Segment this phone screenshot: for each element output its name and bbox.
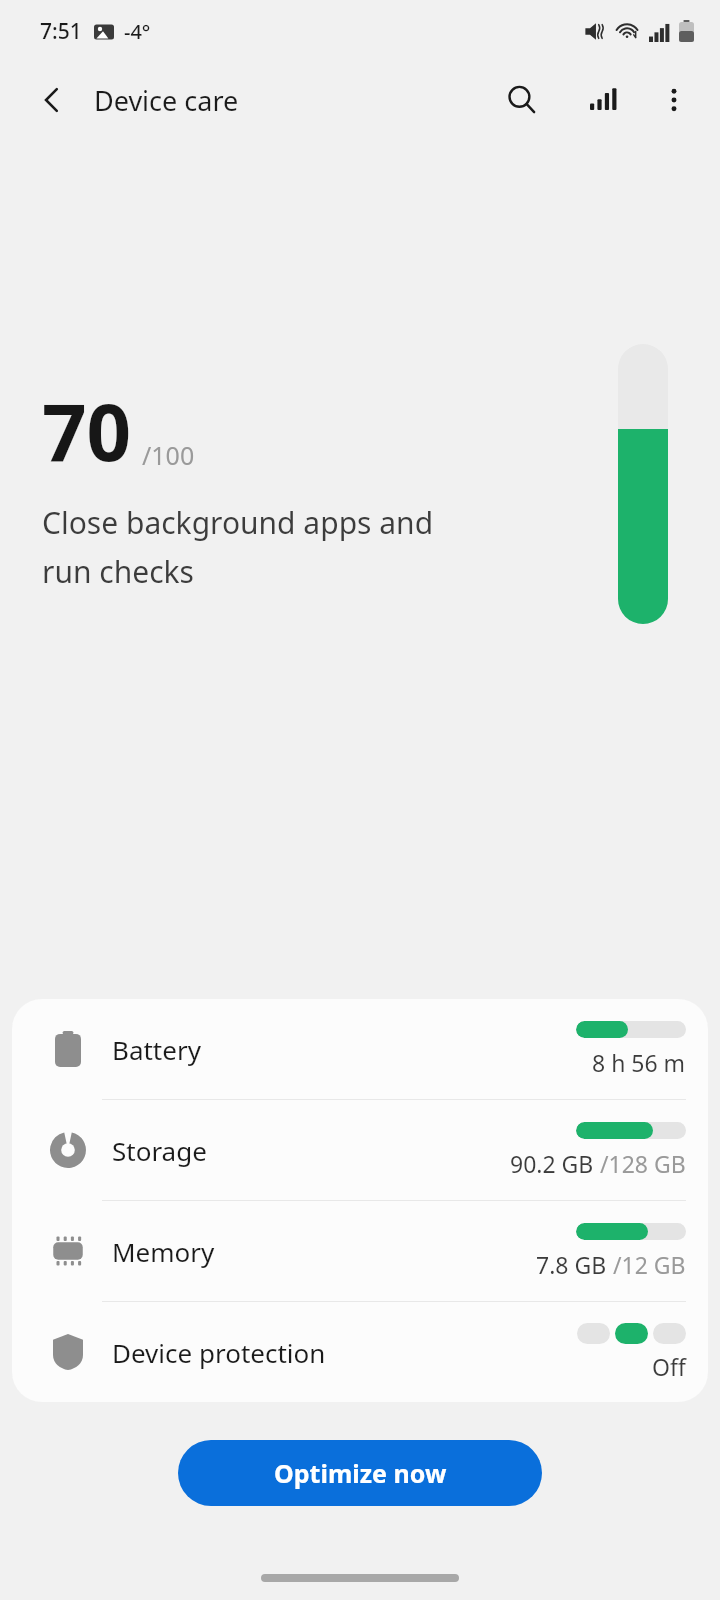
button[interactable]: Memory [12, 1201, 708, 1301]
staticText: /12 GB [613, 1249, 686, 1280]
button[interactable]: Battery [12, 999, 708, 1099]
button[interactable]: Device protection [12, 1302, 708, 1402]
button[interactable]: Usage statistics [572, 68, 636, 132]
button[interactable]: More options [642, 68, 706, 132]
button[interactable]: Back [24, 72, 80, 128]
staticText: -4° [124, 18, 151, 45]
staticText: /128 GB [600, 1148, 686, 1179]
staticText: Off [652, 1351, 686, 1382]
button[interactable]: Storage [12, 1100, 708, 1200]
staticText: 8 h 56 m [592, 1047, 686, 1078]
staticText: Device care [94, 82, 239, 119]
staticText: 70 [42, 378, 132, 484]
staticText: Memory [112, 1234, 215, 1269]
staticText: Close background apps and [42, 502, 434, 543]
button[interactable]: Optimize now [178, 1440, 542, 1506]
staticText: run checks [42, 551, 194, 592]
staticText: Storage [112, 1133, 207, 1168]
staticText: Device protection [112, 1335, 326, 1370]
staticText: Battery [112, 1032, 201, 1067]
staticText: Optimize now [274, 1456, 447, 1490]
staticText: /100 [142, 438, 195, 472]
button[interactable]: Search [490, 68, 554, 132]
staticText: 90.2 GB [510, 1148, 600, 1179]
staticText: 7.8 GB [536, 1249, 613, 1280]
staticText: 7:51 [40, 17, 82, 46]
